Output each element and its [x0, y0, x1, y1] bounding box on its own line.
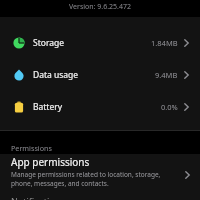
button[interactable]: Storage — [0, 27, 200, 59]
staticText: 1.84MB — [151, 38, 178, 48]
staticText: 0.0% — [161, 102, 178, 112]
staticText: Battery — [33, 101, 63, 113]
staticText: Notifications — [11, 195, 65, 200]
button[interactable]: Data usage — [0, 59, 200, 91]
staticText: 9.4MB — [155, 70, 178, 80]
staticText: App permissions — [11, 155, 90, 169]
staticText: Version: 9.6.25.472 — [69, 2, 131, 12]
staticText: Data usage — [33, 69, 79, 81]
staticText: Manage permissions related to location, … — [11, 170, 161, 188]
staticText: Permissions — [11, 143, 52, 153]
button[interactable]: App permissions — [0, 154, 200, 200]
button[interactable]: Battery — [0, 91, 200, 123]
staticText: Storage — [33, 37, 65, 49]
